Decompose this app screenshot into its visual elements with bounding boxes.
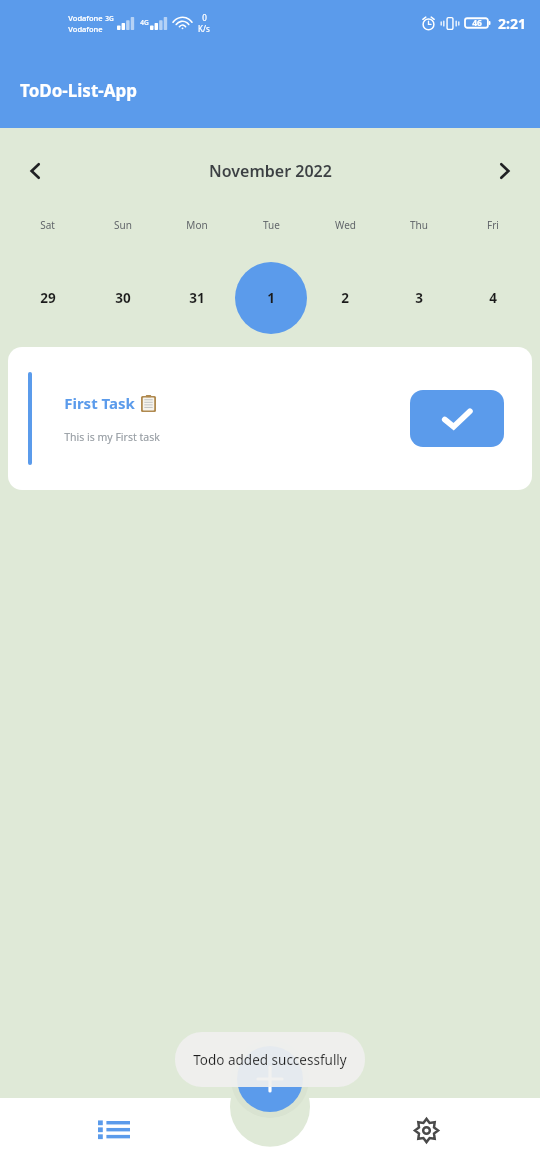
staticText: Vodafone	[68, 24, 103, 34]
staticText: 2:21	[498, 14, 526, 33]
staticText: Fri	[487, 218, 499, 232]
button[interactable]: Mark task complete	[410, 390, 504, 447]
staticText: K/s	[198, 23, 210, 34]
button[interactable]: 30	[85, 260, 160, 336]
staticText: 2	[341, 289, 349, 307]
staticText: 30	[115, 289, 131, 307]
button[interactable]: 2	[308, 260, 382, 336]
button[interactable]: 1	[234, 260, 308, 336]
staticText: First Task	[64, 393, 135, 413]
staticText: 4	[489, 289, 497, 307]
staticText: 46	[472, 17, 482, 29]
button[interactable]: 4	[456, 260, 530, 336]
button[interactable]: 29	[10, 260, 85, 336]
staticText: 0	[202, 12, 207, 23]
staticText: 31	[189, 289, 205, 307]
button[interactable]: First Task	[8, 347, 532, 490]
staticText: ToDo-List-App	[20, 79, 137, 102]
button[interactable]: Previous month	[16, 152, 54, 190]
staticText: Sat	[40, 218, 55, 232]
staticText: Thu	[410, 218, 428, 232]
button[interactable]: Add todo	[231, 1040, 309, 1118]
staticText: Wed	[335, 218, 356, 232]
button[interactable]: Next month	[486, 152, 524, 190]
staticText: Vodafone	[68, 13, 103, 23]
staticText: This is my First task	[64, 430, 160, 444]
button[interactable]: Settings	[313, 1098, 540, 1170]
button[interactable]: 31	[160, 260, 234, 336]
button[interactable]: Tasks list	[0, 1098, 227, 1170]
button[interactable]: 3	[382, 260, 456, 336]
staticText: 3G	[105, 14, 114, 23]
staticText: 3	[415, 289, 423, 307]
staticText: Todo added successfully	[193, 1051, 347, 1069]
staticText: Mon	[186, 218, 208, 232]
staticText: 1	[267, 289, 275, 307]
staticText: Tue	[263, 218, 280, 232]
staticText: 4G	[140, 18, 149, 27]
staticText: November 2022	[209, 160, 332, 182]
staticText: 29	[40, 289, 56, 307]
staticText: Sun	[114, 218, 132, 232]
